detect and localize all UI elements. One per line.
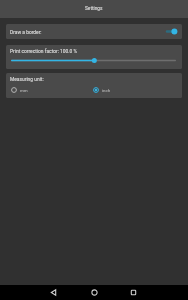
staticText: Settings xyxy=(85,6,103,12)
button[interactable]: Print correction factor: 100.0 % xyxy=(6,45,182,69)
button[interactable]: Back xyxy=(47,285,60,300)
button[interactable]: Draw a border: xyxy=(6,24,182,39)
staticText: Print correction factor: 100.0 % xyxy=(10,48,78,54)
button[interactable]: mm xyxy=(6,84,90,96)
button[interactable]: Recents xyxy=(127,285,140,300)
button[interactable]: Draw a border xyxy=(164,24,181,39)
staticText: Draw a border: xyxy=(10,29,42,35)
button[interactable]: Print correction factor xyxy=(6,57,182,69)
staticText: mm xyxy=(20,88,28,93)
button[interactable]: Home xyxy=(88,285,101,300)
staticText: inch xyxy=(102,88,111,93)
button[interactable]: inch xyxy=(90,84,174,96)
staticText: Measuring unit: xyxy=(10,76,44,82)
